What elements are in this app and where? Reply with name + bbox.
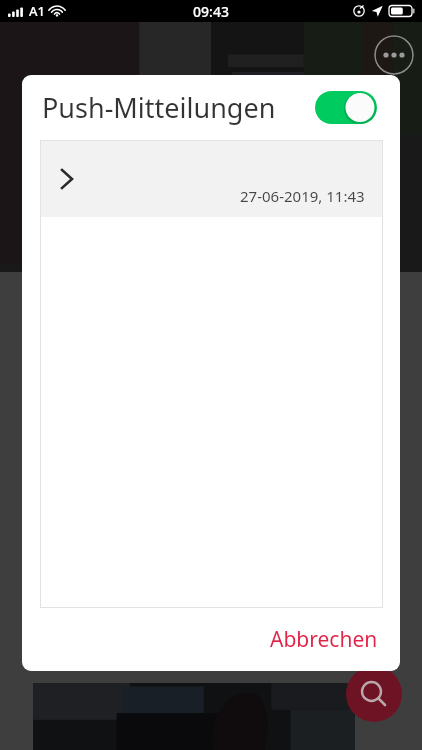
staticText: Push-Mitteilungen [42,89,276,126]
button[interactable]: Abbrechen [264,619,384,660]
staticText: Abbrechen [270,625,378,654]
staticText: A1 [29,2,45,20]
button[interactable]: More options [374,35,414,75]
button[interactable]: 27-06-2019, 11:43 [40,140,383,217]
button[interactable]: Push notifications toggle [315,91,377,124]
staticText: 27-06-2019, 11:43 [240,186,365,206]
staticText: 09:43 [193,2,229,21]
button[interactable]: Search [346,666,402,722]
